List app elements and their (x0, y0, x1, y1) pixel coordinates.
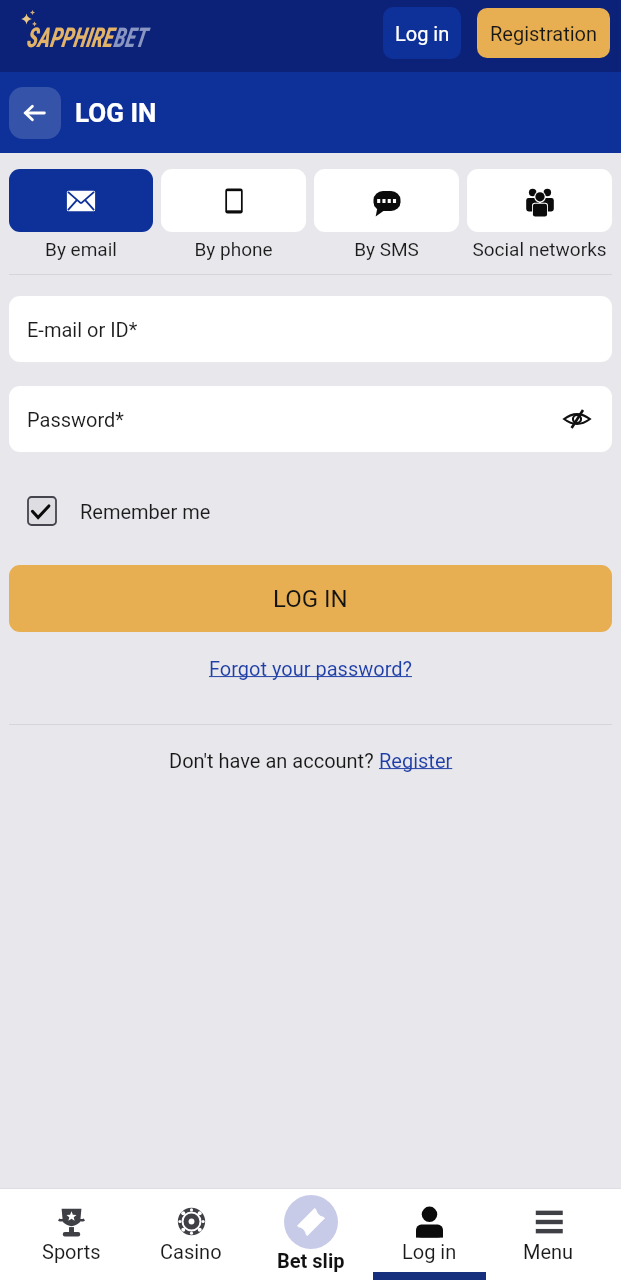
button[interactable]: Bet slip (251, 1189, 370, 1280)
staticText: LOG IN (75, 98, 157, 128)
staticText: LOG IN (273, 585, 348, 613)
staticText: By email (45, 238, 117, 260)
button[interactable]: Social networks (467, 169, 612, 260)
staticText: Registration (490, 22, 598, 45)
button[interactable]: Menu (489, 1189, 608, 1280)
staticText: Casino (160, 1240, 222, 1263)
staticText: Log in (402, 1240, 457, 1263)
button[interactable]: Registration (477, 8, 610, 58)
staticText: Bet slip (277, 1249, 345, 1272)
button[interactable]: Log in (383, 7, 461, 59)
staticText: Password* (27, 408, 124, 431)
staticText: Forgot your password? (209, 657, 412, 680)
staticText: Register (379, 749, 453, 772)
button[interactable]: Register (379, 749, 453, 772)
button[interactable]: Sports (11, 1189, 131, 1280)
button[interactable]: Remember me (27, 496, 594, 526)
staticText: BET (113, 21, 147, 52)
staticText: Menu (523, 1240, 574, 1263)
staticText: SAPPHIRE (26, 21, 113, 52)
staticText: Social networks (472, 238, 607, 260)
button[interactable]: By phone (161, 169, 306, 260)
button[interactable]: Forgot your password? (209, 657, 412, 680)
staticText: Log in (395, 22, 450, 45)
button[interactable]: LOG IN (9, 565, 612, 632)
button[interactable]: By SMS (314, 169, 459, 260)
button[interactable]: Show password (562, 404, 592, 434)
button[interactable]: Password* (9, 386, 612, 452)
button[interactable]: By email (9, 169, 153, 260)
staticText: Sports (42, 1240, 101, 1263)
button[interactable]: Casino (131, 1189, 251, 1280)
button[interactable]: Log in (370, 1189, 489, 1280)
staticText: Remember me (80, 500, 211, 523)
button[interactable]: E-mail or ID* (9, 296, 612, 362)
button[interactable]: Back (9, 87, 61, 139)
staticText: Don't have an account? (169, 749, 379, 772)
staticText: E-mail or ID* (27, 318, 138, 341)
staticText: By phone (194, 238, 273, 260)
staticText: By SMS (354, 238, 419, 260)
